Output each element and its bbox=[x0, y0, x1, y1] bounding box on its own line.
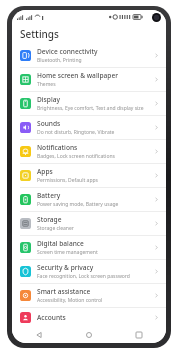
staticText: Settings bbox=[20, 27, 59, 41]
button[interactable]: Apps bbox=[12, 163, 166, 187]
button[interactable]: Battery bbox=[12, 187, 166, 211]
staticText: Power saving mode, Battery usage bbox=[37, 201, 119, 208]
staticText: Device connectivity bbox=[37, 47, 98, 56]
staticText: Storage cleaner bbox=[37, 225, 74, 232]
button[interactable]: Back bbox=[30, 327, 48, 343]
staticText: Smart assistance bbox=[37, 287, 91, 296]
button[interactable]: Storage bbox=[12, 211, 166, 235]
staticText: Do not disturb, Ringtone, Vibrate bbox=[37, 129, 115, 136]
staticText: Face recognition, Lock screen password bbox=[37, 273, 130, 280]
staticText: Display bbox=[37, 95, 60, 104]
staticText: Notifications bbox=[37, 143, 78, 152]
staticText: Digital balance bbox=[37, 239, 84, 248]
button[interactable]: Recent apps bbox=[130, 327, 148, 343]
button[interactable]: Sounds bbox=[12, 115, 166, 139]
button[interactable]: Display bbox=[12, 91, 166, 115]
staticText: Screen time management bbox=[37, 249, 98, 256]
button[interactable]: Device connectivity bbox=[12, 44, 166, 67]
staticText: Home screen & wallpaper bbox=[37, 71, 118, 80]
staticText: Accessibility, Motion control bbox=[37, 297, 103, 304]
button[interactable]: Accounts bbox=[12, 307, 166, 327]
button[interactable]: Home bbox=[80, 327, 98, 343]
staticText: Storage bbox=[37, 215, 62, 224]
staticText: Accounts bbox=[37, 313, 66, 322]
staticText: Bluetooth, Printing bbox=[37, 57, 82, 64]
staticText: Apps bbox=[37, 167, 53, 176]
button[interactable]: Smart assistance bbox=[12, 283, 166, 307]
staticText: Security & privacy bbox=[37, 263, 94, 272]
button[interactable]: Notifications bbox=[12, 139, 166, 163]
staticText: Permissions, Default apps bbox=[37, 177, 98, 184]
button[interactable]: Home screen & wallpaper bbox=[12, 67, 166, 91]
staticText: Badges, Lock screen notifications bbox=[37, 153, 115, 160]
staticText: Sounds bbox=[37, 119, 61, 128]
staticText: Battery bbox=[37, 191, 61, 200]
staticText: Themes bbox=[37, 81, 56, 88]
button[interactable]: Digital balance bbox=[12, 235, 166, 259]
staticText: Brightness, Eye comfort, Text and displa… bbox=[37, 105, 144, 112]
button[interactable]: Security & privacy bbox=[12, 259, 166, 283]
